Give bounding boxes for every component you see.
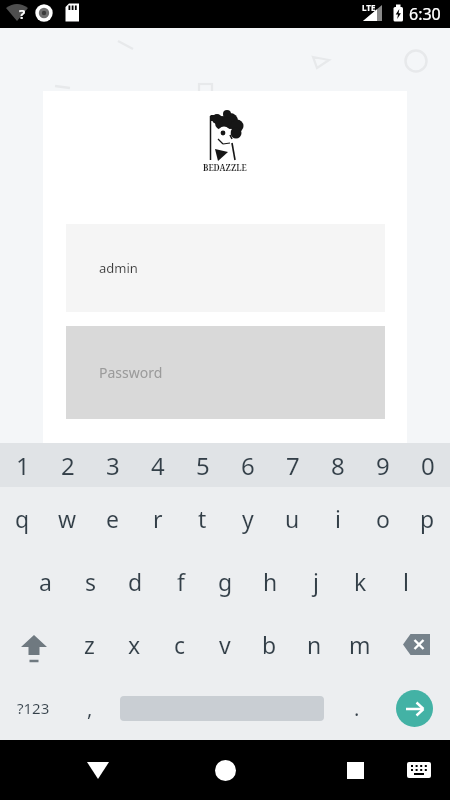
staticText: l [403, 566, 409, 597]
staticText: 4 [151, 449, 165, 482]
button[interactable]: o [360, 487, 405, 550]
staticText: ? [19, 5, 26, 23]
staticText: r [153, 503, 163, 534]
staticText: x [128, 629, 141, 660]
button[interactable]: j [293, 550, 338, 613]
button[interactable]: 9 [360, 443, 405, 487]
button[interactable]: k [338, 550, 383, 613]
button[interactable]: 8 [315, 443, 360, 487]
button[interactable]: i [315, 487, 360, 550]
button[interactable]: u [270, 487, 315, 550]
staticText: z [84, 629, 95, 660]
button[interactable]: , [67, 676, 112, 740]
staticText: Password [99, 363, 163, 382]
staticText: ?123 [17, 698, 50, 718]
staticText: n [307, 629, 322, 660]
button[interactable] [333, 748, 378, 793]
button[interactable]: d [113, 550, 158, 613]
button[interactable] [379, 676, 450, 740]
button[interactable] [203, 748, 248, 793]
staticText: b [262, 629, 277, 660]
button[interactable]: 2 [45, 443, 90, 487]
button[interactable]: n [292, 613, 337, 676]
staticText: k [354, 566, 367, 597]
staticText: 5 [196, 449, 210, 482]
staticText: t [198, 503, 207, 534]
staticText: d [128, 566, 143, 597]
button[interactable]: a [22, 550, 68, 613]
button[interactable]: m [337, 613, 382, 676]
staticText: BEDAZZLE [203, 162, 247, 173]
staticText: 6:30 [409, 3, 441, 25]
staticText: 3 [106, 449, 120, 482]
staticText: 6 [241, 449, 255, 482]
button[interactable]: b [247, 613, 292, 676]
button[interactable]: h [248, 550, 293, 613]
button[interactable]: ?123 [0, 676, 67, 740]
staticText: LTE [362, 2, 376, 13]
staticText: 9 [376, 449, 390, 482]
button[interactable]: z [67, 613, 112, 676]
button[interactable] [112, 676, 334, 740]
staticText: j [313, 566, 319, 597]
button[interactable]: s [68, 550, 113, 613]
button[interactable]: v [202, 613, 247, 676]
button[interactable]: 1 [0, 443, 45, 487]
button[interactable]: g [203, 550, 248, 613]
button[interactable]: 7 [270, 443, 315, 487]
button[interactable]: 0 [405, 443, 450, 487]
staticText: i [335, 503, 341, 534]
button[interactable]: l [383, 550, 428, 613]
button[interactable]: x [112, 613, 157, 676]
staticText: f [177, 566, 185, 597]
staticText: . [354, 695, 360, 722]
button[interactable]: r [135, 487, 180, 550]
staticText: m [349, 629, 371, 660]
button[interactable]: p [405, 487, 450, 550]
staticText: 8 [331, 449, 345, 482]
button[interactable]: e [90, 487, 135, 550]
staticText: admin [99, 259, 138, 277]
button[interactable]: c [157, 613, 202, 676]
staticText: u [285, 503, 300, 534]
button[interactable]: 6 [225, 443, 270, 487]
staticText: 7 [286, 449, 300, 482]
staticText: o [376, 503, 390, 534]
button[interactable]: 3 [90, 443, 135, 487]
staticText: y [242, 503, 254, 534]
staticText: s [85, 566, 97, 597]
staticText: c [174, 629, 186, 660]
staticText: 1 [16, 449, 30, 482]
button[interactable]: 5 [180, 443, 225, 487]
button[interactable]: y [225, 487, 270, 550]
staticText: w [58, 503, 77, 534]
button[interactable] [0, 613, 67, 676]
button[interactable]: . [334, 676, 379, 740]
button[interactable]: 4 [135, 443, 180, 487]
staticText: 2 [61, 449, 75, 482]
button[interactable] [399, 750, 439, 790]
staticText: v [219, 629, 231, 660]
staticText: a [39, 566, 52, 597]
button[interactable] [382, 613, 450, 676]
staticText: 0 [421, 449, 435, 482]
button[interactable]: Password [66, 326, 385, 419]
button[interactable] [75, 748, 120, 793]
staticText: , [87, 695, 93, 722]
button[interactable]: admin [66, 224, 385, 312]
button[interactable]: t [180, 487, 225, 550]
staticText: p [420, 503, 435, 534]
button[interactable]: q [0, 487, 45, 550]
staticText: q [15, 503, 30, 534]
button[interactable]: f [158, 550, 203, 613]
staticText: g [218, 566, 233, 597]
button[interactable]: w [45, 487, 90, 550]
staticText: h [263, 566, 278, 597]
staticText: e [106, 503, 119, 534]
